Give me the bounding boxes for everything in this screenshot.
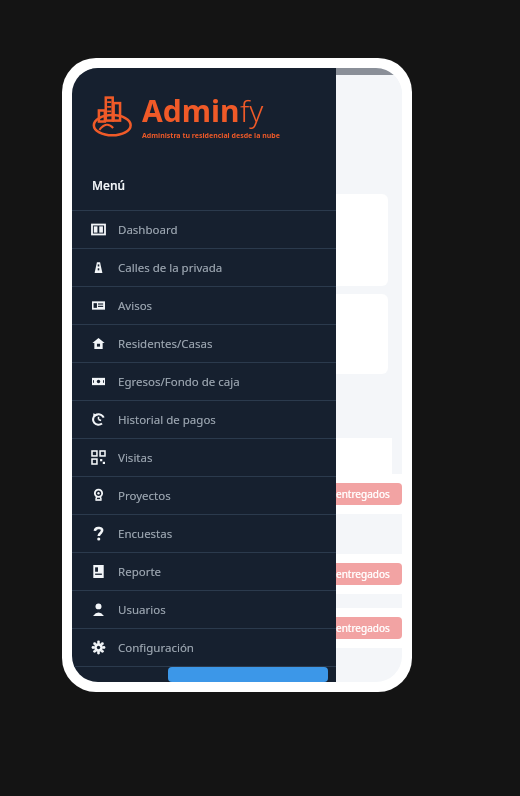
staticText: entregados <box>336 487 390 501</box>
staticText: Residentes/Casas <box>118 336 213 352</box>
button[interactable]: Registrar pago en efectivo <box>168 667 328 682</box>
staticText: Configuración <box>118 640 194 656</box>
button[interactable]: Usuarios <box>72 591 336 628</box>
staticText: Dashboard <box>118 222 178 238</box>
button[interactable]: Configuración <box>72 629 336 666</box>
staticText: Administra tu residencial desde la nube <box>142 131 280 141</box>
staticText: Calles de la privada <box>118 260 223 276</box>
staticText: entregados <box>100 321 160 336</box>
staticText: Historial de pagos <box>118 412 216 428</box>
staticText: 24 <box>100 342 113 357</box>
staticText: Avisos <box>118 298 153 314</box>
button[interactable]: Calles de la privada <box>72 249 336 286</box>
staticText: Encuestas <box>118 526 173 542</box>
staticText: entregados <box>336 567 390 581</box>
staticText: entregados <box>336 621 390 635</box>
button[interactable]: Encuestas <box>72 515 336 552</box>
staticText: Recaudación <box>100 218 166 233</box>
button[interactable]: entregados <box>72 554 402 594</box>
staticText: Menú <box>92 177 125 193</box>
staticText: fy <box>240 90 264 131</box>
staticText: Admin <box>142 90 240 131</box>
staticText: Usuarios <box>118 602 166 618</box>
button[interactable]: Residentes/Casas <box>72 325 336 362</box>
button[interactable]: Paquetes <box>86 294 388 374</box>
button[interactable]: Egresos/Fondo de caja <box>72 363 336 400</box>
staticText: Visitas <box>118 450 153 466</box>
staticText: Proyectos <box>118 488 171 504</box>
button[interactable]: entregados <box>72 474 402 514</box>
staticText: (casas) <box>100 241 135 256</box>
button[interactable]: Dashboard <box>72 211 336 248</box>
staticText: Paquetes <box>100 306 149 321</box>
staticText: Egresos/Fondo de caja <box>118 374 240 390</box>
button[interactable]: entregados <box>72 608 402 648</box>
button[interactable]: Recaudación <box>86 194 388 286</box>
button[interactable]: Historial de pagos <box>72 401 336 438</box>
button[interactable]: Proyectos <box>72 477 336 514</box>
button[interactable]: Visitas <box>72 439 336 476</box>
button[interactable]: Avisos <box>72 287 336 324</box>
button[interactable]: Reporte <box>72 553 336 590</box>
staticText: Reporte <box>118 564 162 580</box>
